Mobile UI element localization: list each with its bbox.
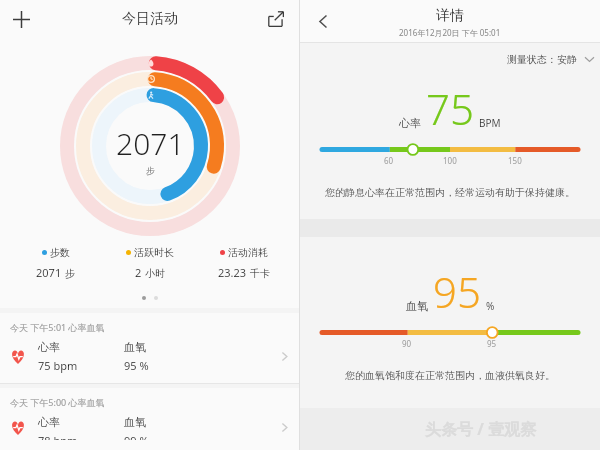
staticText: 今天 下午5:00 心率血氧 [10, 396, 105, 408]
staticText: 2 [135, 265, 142, 280]
staticText: 75 [426, 80, 474, 137]
staticText: 您的血氧饱和度在正常范围内，血液供氧良好。 [312, 369, 588, 382]
staticText: 100 [443, 155, 457, 166]
staticText: 血氧 [124, 340, 146, 354]
staticText: 心率 [38, 340, 60, 354]
button[interactable]: 今天 下午5:01 心率血氧 [0, 313, 299, 383]
staticText: 活跃时长 [134, 246, 174, 259]
staticText: 2071 [116, 123, 185, 164]
button[interactable]: Share [261, 4, 291, 34]
button[interactable]: Back [306, 4, 340, 38]
staticText: 90 [402, 338, 412, 349]
staticText: 血氧 [406, 299, 428, 313]
staticText: 2016年12月20日 下午 05:01 [399, 27, 501, 38]
staticText: 千卡 [250, 267, 270, 280]
staticText: 心率 [38, 415, 60, 429]
staticText: 测量状态：安静 [507, 53, 577, 66]
staticText: 今日活动 [122, 10, 178, 28]
button[interactable]: Add [4, 2, 38, 36]
staticText: 血氧 [124, 415, 146, 429]
button[interactable]: 测量状态：安静 [300, 43, 600, 66]
staticText: 95 % [124, 358, 149, 373]
staticText: 95 [433, 263, 481, 320]
staticText: 详情 [436, 7, 464, 25]
staticText: 60 [384, 155, 394, 166]
staticText: 95 [487, 338, 497, 349]
staticText: 今天 下午5:01 心率血氧 [10, 321, 105, 333]
staticText: 头条号 / 壹观察 [425, 418, 536, 440]
staticText: % [486, 299, 495, 313]
staticText: 75 bpm [38, 358, 78, 373]
staticText: 步 [65, 267, 75, 280]
staticText: 99 % [124, 433, 149, 440]
staticText: 活动消耗 [228, 246, 268, 259]
staticText: 2071 [36, 265, 62, 280]
staticText: 您的静息心率在正常范围内，经常运动有助于保持健康。 [312, 186, 588, 199]
staticText: 心率 [399, 116, 421, 130]
staticText: 78 bpm [38, 433, 78, 440]
staticText: 小时 [145, 267, 165, 280]
staticText: BPM [479, 116, 501, 130]
staticText: 150 [508, 155, 522, 166]
staticText: 步 [146, 165, 155, 176]
staticText: 23.23 [218, 265, 247, 280]
button[interactable]: 今天 下午5:00 心率血氧 [0, 388, 299, 450]
staticText: 步数 [50, 246, 70, 259]
